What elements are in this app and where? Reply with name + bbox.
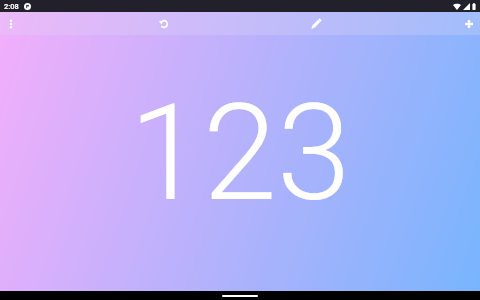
button[interactable]: More options bbox=[0, 13, 22, 35]
staticText: 123 bbox=[129, 76, 351, 232]
button[interactable]: Add bbox=[458, 13, 480, 35]
button[interactable]: Edit bbox=[305, 13, 327, 35]
button[interactable]: Undo bbox=[153, 13, 175, 35]
staticText: 2:08 bbox=[4, 2, 19, 11]
